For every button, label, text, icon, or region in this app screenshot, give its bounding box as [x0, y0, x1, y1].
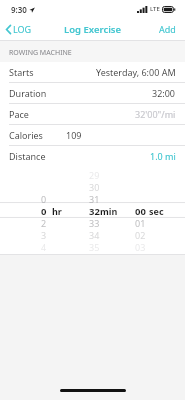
button[interactable]: Duration [0, 83, 185, 103]
staticText: LOG [13, 23, 32, 35]
staticText: Yesterday, 6:00 AM [96, 66, 176, 78]
staticText: 00 [135, 205, 146, 218]
staticText: 0 [41, 193, 47, 205]
staticText: Calories [9, 129, 43, 141]
staticText: Pace [9, 108, 29, 120]
button[interactable]: Distance [0, 146, 185, 166]
staticText: 1.0 mi [150, 150, 176, 162]
button[interactable]: Calories [0, 125, 185, 145]
staticText: 32:00 [152, 87, 176, 99]
button[interactable]: Pace [0, 104, 185, 124]
staticText: 2 [41, 217, 47, 229]
staticText: 34 [89, 229, 100, 241]
staticText: ROWING MACHINE [9, 48, 72, 58]
staticText: 32'00"/mi [135, 108, 176, 120]
staticText: 02 [135, 229, 146, 241]
staticText: Distance [9, 150, 46, 162]
staticText: 32 [89, 205, 100, 218]
staticText: 01 [135, 217, 146, 229]
staticText: 29 [89, 169, 100, 181]
staticText: Add [159, 23, 176, 35]
button[interactable]: Duration picker [0, 166, 185, 254]
staticText: LTE [150, 5, 160, 13]
staticText: 03 [135, 241, 146, 253]
button[interactable]: Add [151, 19, 185, 39]
staticText: 33 [89, 217, 100, 229]
staticText: 109 [66, 129, 82, 141]
staticText: sec [149, 205, 164, 217]
button[interactable]: Starts [0, 62, 185, 82]
staticText: Starts [9, 66, 34, 78]
staticText: Duration [9, 87, 47, 99]
staticText: 30 [89, 181, 100, 193]
button[interactable]: LOG [0, 19, 40, 39]
staticText: 35 [89, 241, 100, 253]
staticText: 4 [41, 241, 47, 253]
staticText: 9:30 [11, 4, 27, 15]
staticText: min [100, 205, 118, 217]
staticText: 31 [89, 193, 100, 205]
staticText: 0 [41, 205, 47, 218]
staticText: 3 [41, 229, 47, 241]
staticText: Log Exercise [64, 23, 122, 36]
staticText: hr [52, 205, 62, 217]
